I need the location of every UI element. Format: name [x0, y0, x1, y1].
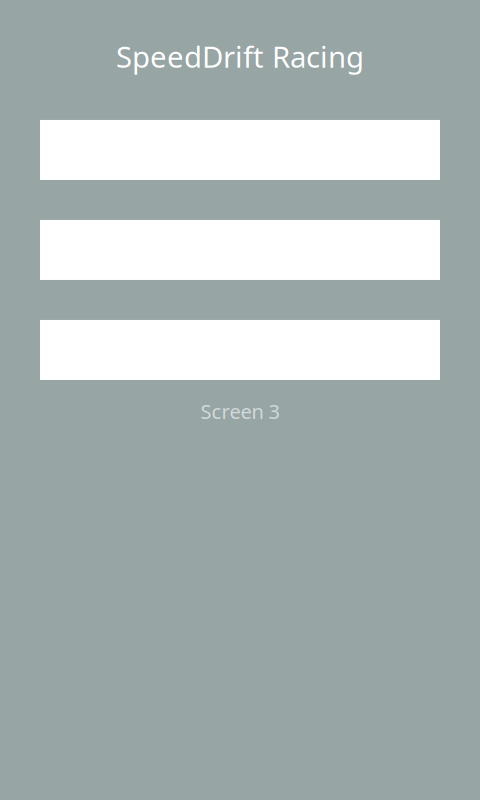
staticText: Screen 3	[200, 398, 279, 425]
staticText: SpeedDrift Racing	[116, 37, 364, 76]
